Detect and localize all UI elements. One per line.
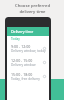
staticText: 12:00 - 15:00 <box>11 58 33 63</box>
staticText: Delivery window, today <box>11 49 46 53</box>
staticText: 9:00 - 12:00 <box>11 44 31 49</box>
button[interactable]: Delivery time <box>7 27 49 36</box>
staticText: Today, free delivery <box>11 77 40 81</box>
staticText: 15:00 - 18:00 <box>11 72 33 77</box>
button[interactable]: 12:00 - 15:00 <box>7 55 49 69</box>
staticText: Delivery window <box>11 63 36 67</box>
button[interactable]: 15:00 - 18:00 <box>7 69 49 83</box>
staticText: Today <box>11 37 20 41</box>
staticText: Delivery time <box>11 29 34 34</box>
staticText: delivery time <box>19 9 46 15</box>
button[interactable]: 9:00 - 12:00 <box>7 41 49 55</box>
staticText: Choose preferred <box>15 3 50 9</box>
